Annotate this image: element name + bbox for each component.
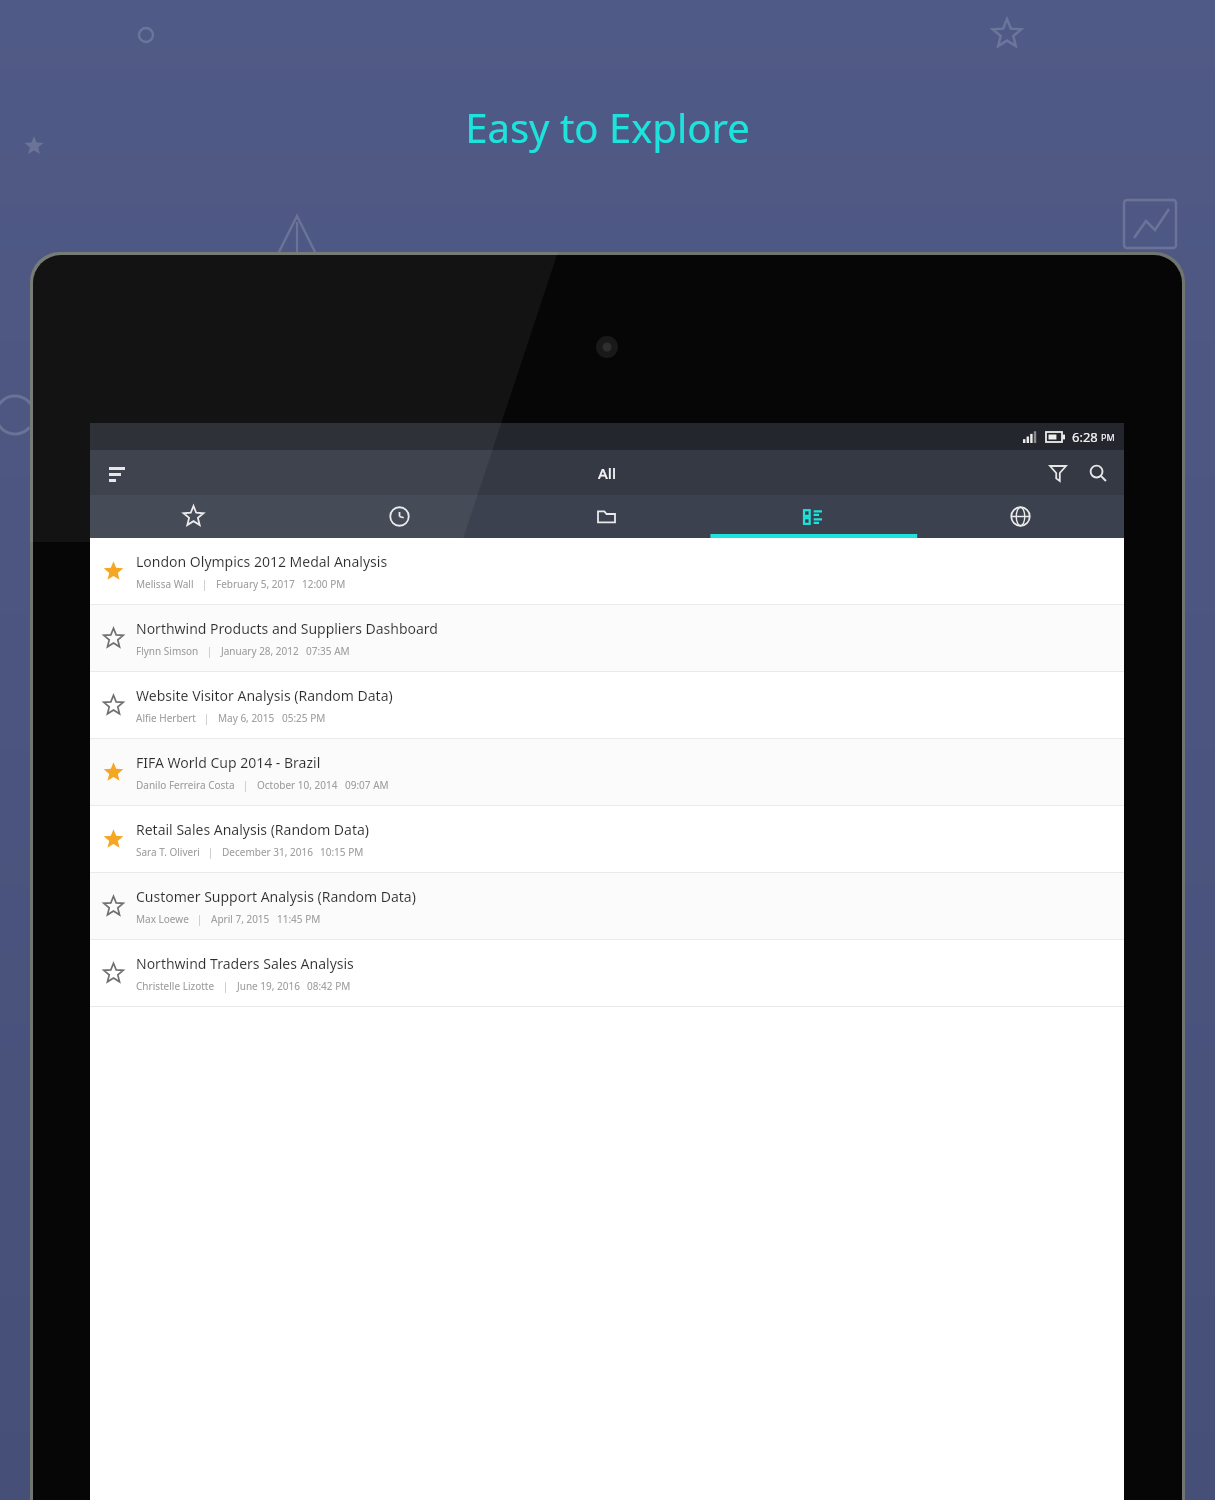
button[interactable]: Favorite: [90, 605, 1124, 671]
staticText: 07:35 AM: [306, 644, 350, 658]
staticText: Retail Sales Analysis (Random Data): [136, 820, 370, 839]
staticText: June 19, 2016: [237, 979, 300, 993]
staticText: |: [189, 912, 211, 926]
staticText: |: [199, 644, 221, 658]
staticText: December 31, 2016: [222, 845, 313, 859]
button[interactable]: Favorite: [90, 538, 136, 604]
button[interactable]: Favorite: [90, 538, 1124, 604]
button[interactable]: Favorite: [90, 739, 1124, 805]
staticText: |: [196, 711, 218, 725]
staticText: Christelle Lizotte: [136, 979, 215, 993]
staticText: FIFA World Cup 2014 - Brazil: [136, 753, 321, 772]
button[interactable]: Search: [1078, 453, 1118, 493]
button[interactable]: Favorites: [90, 495, 296, 538]
staticText: Northwind Products and Suppliers Dashboa…: [136, 619, 438, 638]
staticText: |: [194, 577, 216, 591]
staticText: 08:42 PM: [307, 979, 351, 993]
staticText: February 5, 2017: [216, 577, 295, 591]
staticText: October 10, 2014: [257, 778, 338, 792]
staticText: |: [200, 845, 222, 859]
button[interactable]: Favorite: [90, 940, 136, 1006]
staticText: May 6, 2015: [218, 711, 275, 725]
staticText: All: [598, 463, 616, 483]
button[interactable]: Favorite: [90, 672, 1124, 738]
staticText: Melissa Wall: [136, 577, 194, 591]
staticText: 11:45 PM: [277, 912, 321, 926]
button[interactable]: Folders: [503, 495, 710, 538]
button[interactable]: Favorite: [90, 806, 1124, 872]
staticText: Easy to Explore: [0, 100, 1215, 154]
staticText: Northwind Traders Sales Analysis: [136, 954, 354, 973]
staticText: London Olympics 2012 Medal Analysis: [136, 552, 388, 571]
staticText: 05:25 PM: [282, 711, 326, 725]
staticText: |: [215, 979, 237, 993]
button[interactable]: Favorite: [90, 672, 136, 738]
button[interactable]: Favorite: [90, 940, 1124, 1006]
button[interactable]: Global: [917, 495, 1124, 538]
staticText: 6:28: [1072, 428, 1098, 446]
staticText: PM: [1101, 431, 1115, 443]
staticText: Danilo Ferreira Costa: [136, 778, 235, 792]
staticText: 10:15 PM: [320, 845, 364, 859]
button[interactable]: Menu: [98, 454, 136, 492]
button[interactable]: Favorite: [90, 605, 136, 671]
staticText: Alfie Herbert: [136, 711, 196, 725]
staticText: January 28, 2012: [221, 644, 299, 658]
button[interactable]: Favorite: [90, 873, 136, 939]
staticText: Flynn Simson: [136, 644, 199, 658]
staticText: April 7, 2015: [211, 912, 270, 926]
button[interactable]: Filter: [1038, 453, 1078, 493]
staticText: 09:07 AM: [345, 778, 389, 792]
button[interactable]: All items: [710, 495, 917, 538]
staticText: Website Visitor Analysis (Random Data): [136, 686, 393, 705]
button[interactable]: Recent: [296, 495, 503, 538]
staticText: 12:00 PM: [302, 577, 346, 591]
button[interactable]: Favorite: [90, 806, 136, 872]
staticText: Sara T. Oliveri: [136, 845, 200, 859]
button[interactable]: Favorite: [90, 873, 1124, 939]
button[interactable]: Favorite: [90, 739, 136, 805]
staticText: Customer Support Analysis (Random Data): [136, 887, 416, 906]
staticText: Max Loewe: [136, 912, 189, 926]
staticText: |: [235, 778, 257, 792]
